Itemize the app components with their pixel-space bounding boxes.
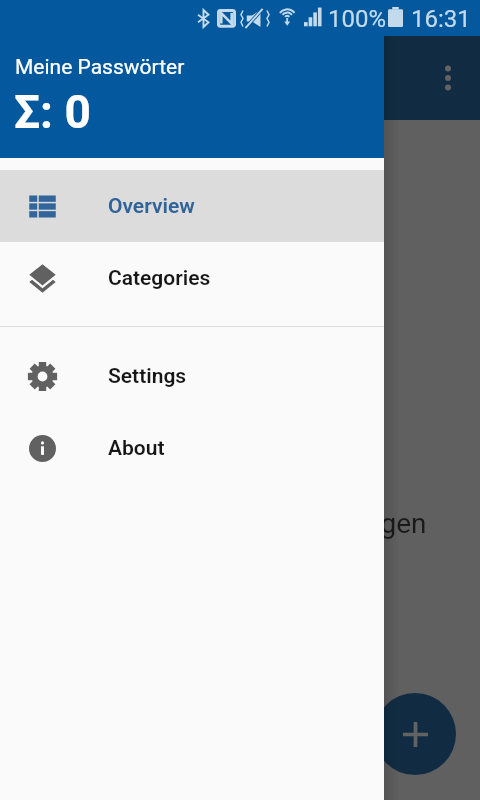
staticText: Overview xyxy=(108,194,195,219)
button[interactable]: Categories xyxy=(0,242,384,314)
button[interactable]: Settings xyxy=(0,340,384,412)
staticText: 100% xyxy=(328,5,387,33)
staticText: About xyxy=(108,436,165,461)
button[interactable]: More options xyxy=(422,52,474,104)
button[interactable]: Add xyxy=(374,693,456,775)
staticText: Categories xyxy=(108,266,211,291)
staticText: Keine Passwörter eingetragen xyxy=(54,507,427,540)
staticText: Σ: 0 xyxy=(14,85,91,139)
staticText: 16:31 xyxy=(411,5,471,33)
staticText: Meine Passwörter xyxy=(15,55,185,80)
staticText: Settings xyxy=(108,364,187,389)
button[interactable]: Overview xyxy=(0,170,384,242)
button[interactable]: About xyxy=(0,412,384,484)
